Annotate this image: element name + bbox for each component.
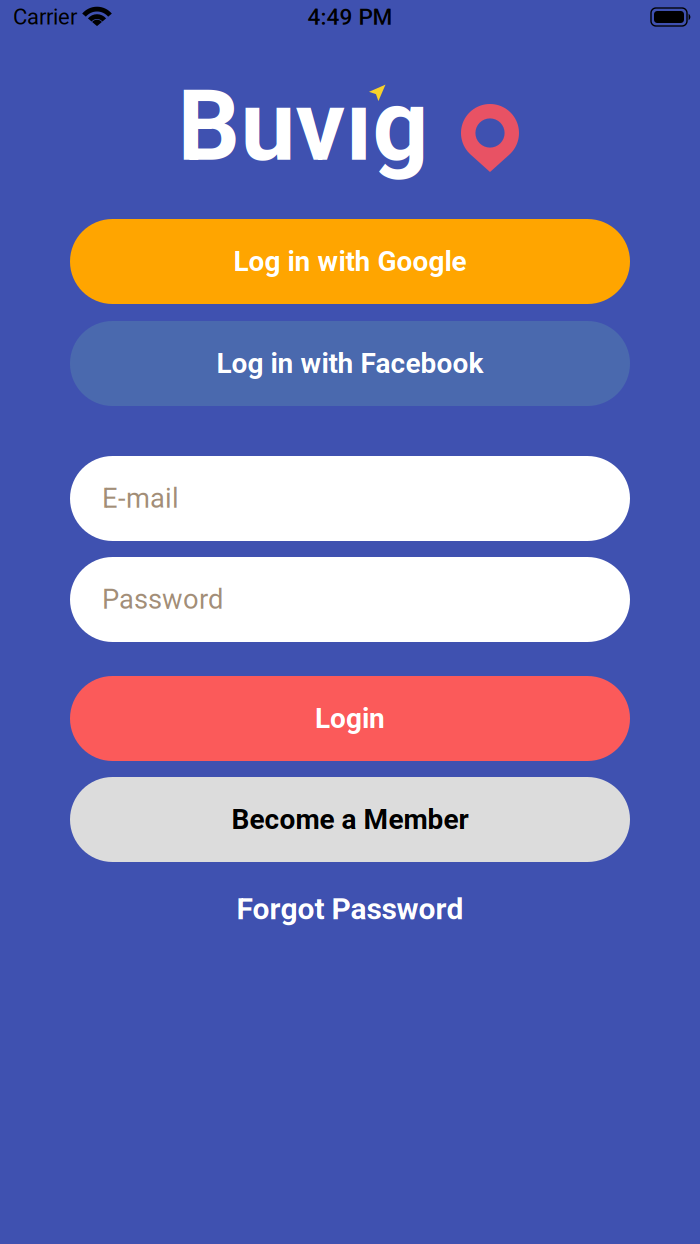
button[interactable]: Become a Member [70,777,630,862]
button[interactable]: Login [70,676,630,761]
staticText: Login [315,702,385,735]
button[interactable]: E-mail [70,456,630,541]
staticText: Log in with Facebook [216,347,483,380]
button[interactable]: Password [70,557,630,642]
staticText: Forgot Password [236,891,463,927]
staticText: Carrier [13,4,77,30]
button[interactable]: Forgot Password [70,893,630,925]
button[interactable]: Log in with Google [70,219,630,304]
staticText: 4:49 PM [307,4,392,30]
button[interactable]: Log in with Facebook [70,321,630,406]
staticText: Become a Member [231,803,468,836]
staticText: E-mail [102,482,179,514]
staticText: Log in with Google [233,245,466,278]
staticText: Buvıg [177,69,428,184]
staticText: Password [102,583,223,615]
